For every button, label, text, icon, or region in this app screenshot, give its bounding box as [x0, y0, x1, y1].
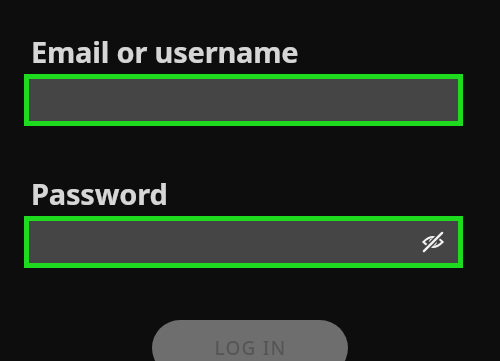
button[interactable]: LOG IN [152, 320, 348, 361]
button[interactable]: Show password [418, 227, 448, 257]
button[interactable]: Show password [24, 216, 463, 268]
staticText: Email or username [31, 32, 299, 71]
staticText: LOG IN [214, 335, 287, 361]
staticText: Password [31, 174, 168, 213]
button[interactable] [24, 74, 463, 126]
